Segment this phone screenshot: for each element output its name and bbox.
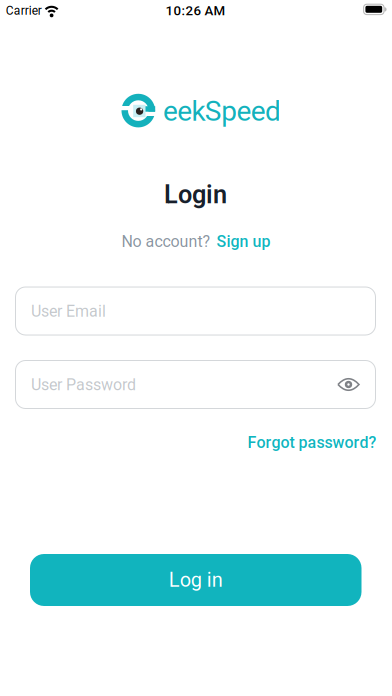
button[interactable]: Forgot password?: [247, 433, 376, 452]
button[interactable]: Sign up: [216, 232, 270, 251]
staticText: User Email: [31, 302, 106, 320]
button[interactable]: Log in: [30, 554, 361, 606]
textField[interactable]: User Email: [31, 302, 360, 320]
staticText: User Password: [31, 376, 136, 394]
staticText: Forgot password?: [247, 433, 376, 452]
staticText: Log in: [169, 569, 223, 591]
button[interactable]: Show password: [331, 371, 365, 397]
staticText: Sign up: [216, 232, 270, 251]
staticText: Login: [164, 180, 227, 209]
staticText: Carrier: [6, 4, 42, 17]
staticText: No account?: [121, 232, 210, 251]
staticText: 10:26 AM: [165, 3, 225, 18]
staticText: User Password: [31, 375, 136, 394]
secureTextField[interactable]: User Password: [31, 375, 360, 394]
staticText: User Email: [31, 302, 106, 320]
staticText: eekSpeed: [163, 95, 281, 127]
